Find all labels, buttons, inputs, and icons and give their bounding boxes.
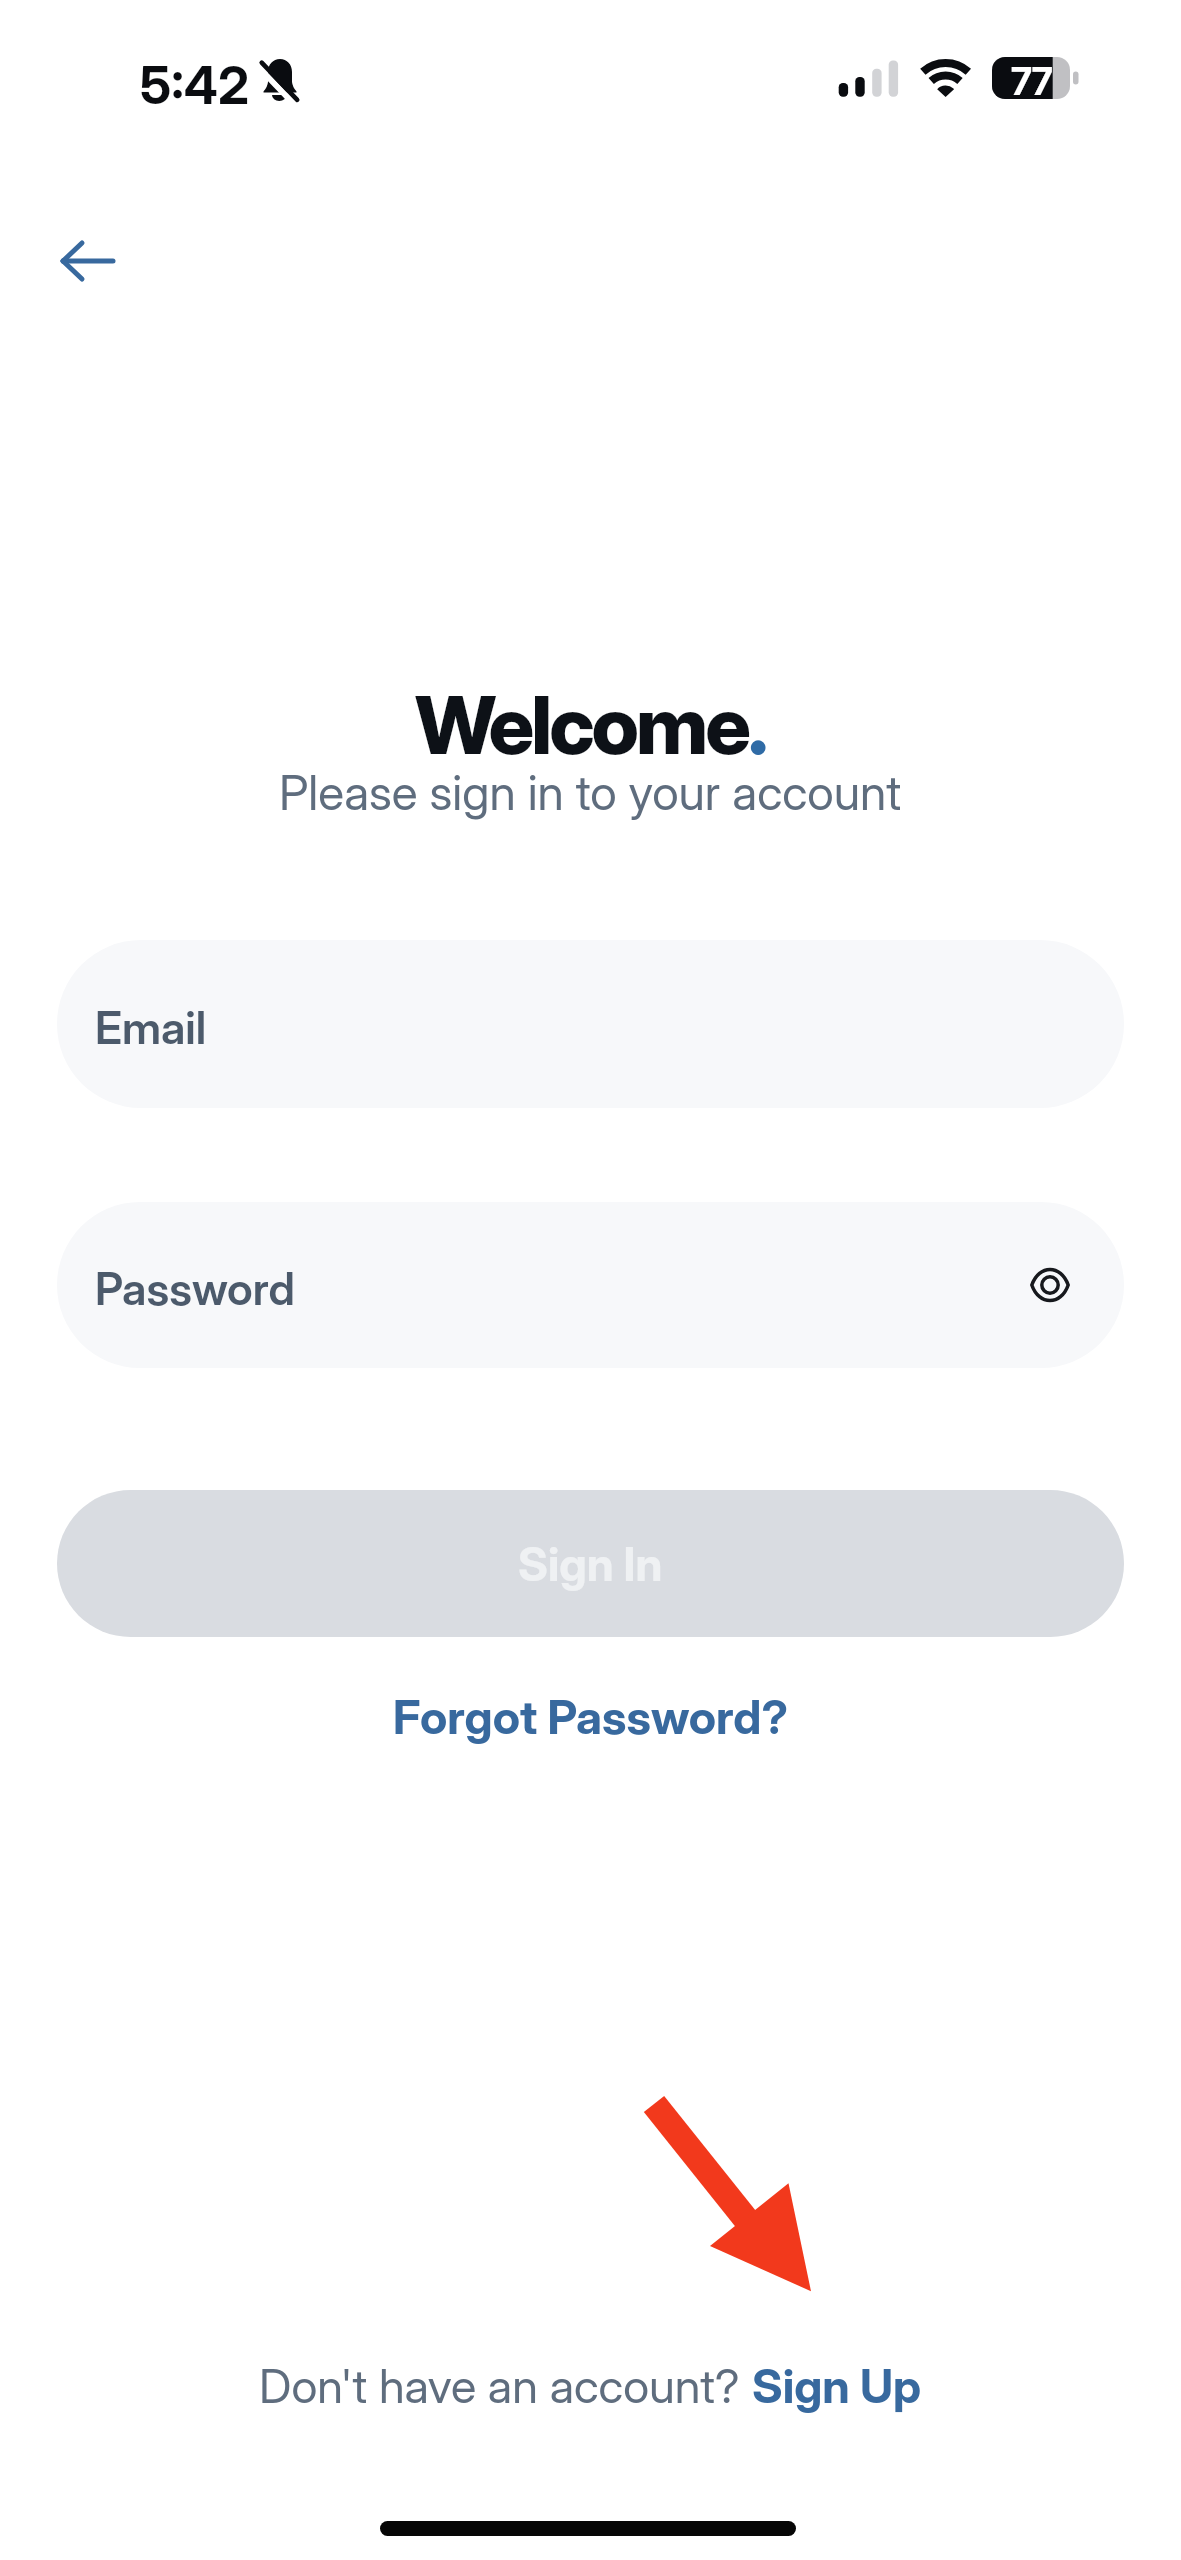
button[interactable]: Forgot Password? xyxy=(393,1688,789,1745)
button[interactable]: Sign Up xyxy=(752,2357,922,2414)
staticText: Sign In xyxy=(518,1536,663,1592)
staticText: Email xyxy=(95,1000,207,1054)
staticText: Please sign in to your account xyxy=(279,763,902,821)
staticText: Sign Up xyxy=(752,2357,922,2414)
staticText: 5:42 xyxy=(140,54,250,114)
button[interactable] xyxy=(40,220,130,300)
staticText: 77 xyxy=(1011,58,1052,99)
button[interactable] xyxy=(1030,1268,1070,1302)
staticText: Password xyxy=(95,1261,295,1315)
button[interactable]: Password xyxy=(57,1202,1124,1368)
staticText: Don't have an account? xyxy=(259,2357,752,2414)
button[interactable]: Sign In xyxy=(57,1490,1124,1637)
button[interactable]: Email xyxy=(57,940,1124,1108)
staticText: Forgot Password? xyxy=(393,1688,789,1745)
staticText: Welcome. xyxy=(415,676,766,773)
